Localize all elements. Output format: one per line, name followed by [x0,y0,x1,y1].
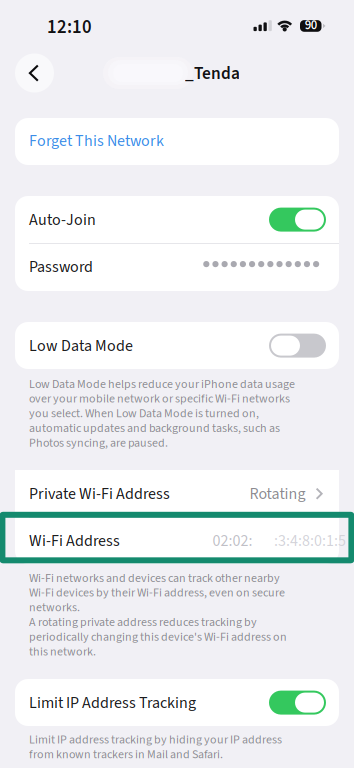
staticText: Private Wi-Fi Address [29,482,170,505]
staticText: Rotating [249,482,305,505]
staticText: 12:10 [47,14,92,40]
staticText: Wi-Fi Address [29,529,120,552]
staticText: 02:02: [213,529,253,552]
staticText: _Tenda [185,61,240,86]
staticText: Wi-Fi networks and devices can track oth… [29,570,280,587]
staticText: Low Data Mode helps reduce your iPhone d… [29,376,295,393]
staticText: you select. When Low Data Mode is turned… [29,405,259,422]
staticText: this network. [29,643,96,660]
staticText: networks. [29,599,80,616]
staticText: Low Data Mode [29,334,133,357]
staticText: Auto-Join [29,208,96,231]
button[interactable]: Forget This Network [15,118,339,165]
staticText: Photos syncing, are paused. [29,434,168,451]
staticText: :3:4:8:0:1:5 [274,529,346,552]
staticText: 90 [305,16,317,34]
staticText: Wi-Fi devices by their Wi-Fi address, ev… [29,584,285,601]
button[interactable]: Private Wi-Fi Address [15,470,339,517]
button[interactable]: Back [15,53,54,92]
staticText: from known trackers in Mail and Safari. [29,746,223,763]
staticText: Limit IP address tracking by hiding your… [29,731,282,748]
staticText: periodically changing this device's Wi-F… [29,628,287,645]
staticText: Forget This Network [29,129,164,152]
staticText: automatic updates and background tasks, … [29,420,280,437]
staticText: over your mobile network or specific Wi-… [29,390,290,407]
staticText: Limit IP Address Tracking [29,691,196,714]
staticText: Password [29,255,93,278]
staticText: A rotating private address reduces track… [29,614,257,631]
